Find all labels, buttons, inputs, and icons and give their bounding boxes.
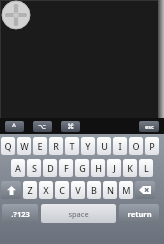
staticText: D	[47, 162, 54, 174]
button[interactable]: C	[55, 181, 69, 199]
button[interactable]: Shift	[1, 181, 21, 199]
staticText: S	[32, 162, 37, 174]
staticText: ^	[12, 122, 17, 132]
button[interactable]: Escape	[139, 121, 159, 132]
button[interactable]: K	[123, 159, 137, 177]
staticText: Z	[27, 184, 33, 196]
button[interactable]: Delete	[135, 181, 155, 199]
button[interactable]: R	[49, 137, 63, 155]
staticText: ⌘	[67, 123, 74, 131]
button[interactable]: Q	[1, 137, 15, 155]
button[interactable]: .?123	[2, 204, 38, 223]
staticText: X	[43, 184, 49, 196]
button[interactable]: U	[97, 137, 111, 155]
staticText: F	[64, 162, 69, 174]
button[interactable]: I	[113, 137, 127, 155]
button[interactable]: S	[27, 159, 41, 177]
staticText: M	[122, 184, 131, 196]
staticText: H	[95, 162, 102, 174]
button[interactable]: V	[71, 181, 85, 199]
button[interactable]: W	[17, 137, 31, 155]
staticText: esc	[145, 123, 154, 130]
button[interactable]: D	[43, 159, 57, 177]
staticText: G	[79, 162, 86, 174]
button[interactable]: O	[129, 137, 143, 155]
button[interactable]: Command	[61, 121, 80, 132]
button[interactable]: Direction pad	[2, 1, 30, 29]
button[interactable]: T	[65, 137, 79, 155]
button[interactable]: B	[87, 181, 101, 199]
staticText: J	[113, 162, 116, 174]
button[interactable]: E	[33, 137, 47, 155]
staticText: C	[59, 184, 65, 196]
button[interactable]: M	[119, 181, 133, 199]
staticText: L	[144, 162, 149, 174]
button[interactable]: Y	[81, 137, 95, 155]
staticText: A	[15, 162, 21, 174]
staticText: return	[127, 209, 152, 219]
button[interactable]: F	[59, 159, 73, 177]
staticText: space	[68, 209, 89, 219]
staticText: N	[107, 184, 114, 196]
staticText: R	[53, 140, 59, 152]
staticText: K	[127, 162, 133, 174]
staticText: O	[132, 140, 140, 152]
staticText: E	[37, 140, 43, 152]
button[interactable]: X	[39, 181, 53, 199]
button[interactable]: J	[107, 159, 121, 177]
staticText: U	[101, 140, 108, 152]
button[interactable]: N	[103, 181, 117, 199]
button[interactable]: Control	[5, 121, 24, 132]
staticText: T	[69, 140, 75, 152]
staticText: I	[118, 140, 122, 152]
staticText: ⌥	[38, 123, 47, 131]
button[interactable]: space	[41, 204, 116, 223]
button[interactable]: A	[11, 159, 25, 177]
button[interactable]: L	[139, 159, 153, 177]
button[interactable]: G	[75, 159, 89, 177]
button[interactable]: P	[145, 137, 159, 155]
staticText: B	[91, 184, 97, 196]
staticText: P	[149, 140, 155, 152]
button[interactable]: Option	[33, 121, 52, 132]
staticText: Y	[85, 140, 91, 152]
button[interactable]: Z	[23, 181, 37, 199]
staticText: .?123	[11, 209, 30, 219]
button[interactable]: return	[119, 204, 159, 223]
staticText: Q	[4, 140, 12, 152]
staticText: V	[75, 184, 81, 196]
button[interactable]: H	[91, 159, 105, 177]
staticText: W	[20, 140, 29, 152]
